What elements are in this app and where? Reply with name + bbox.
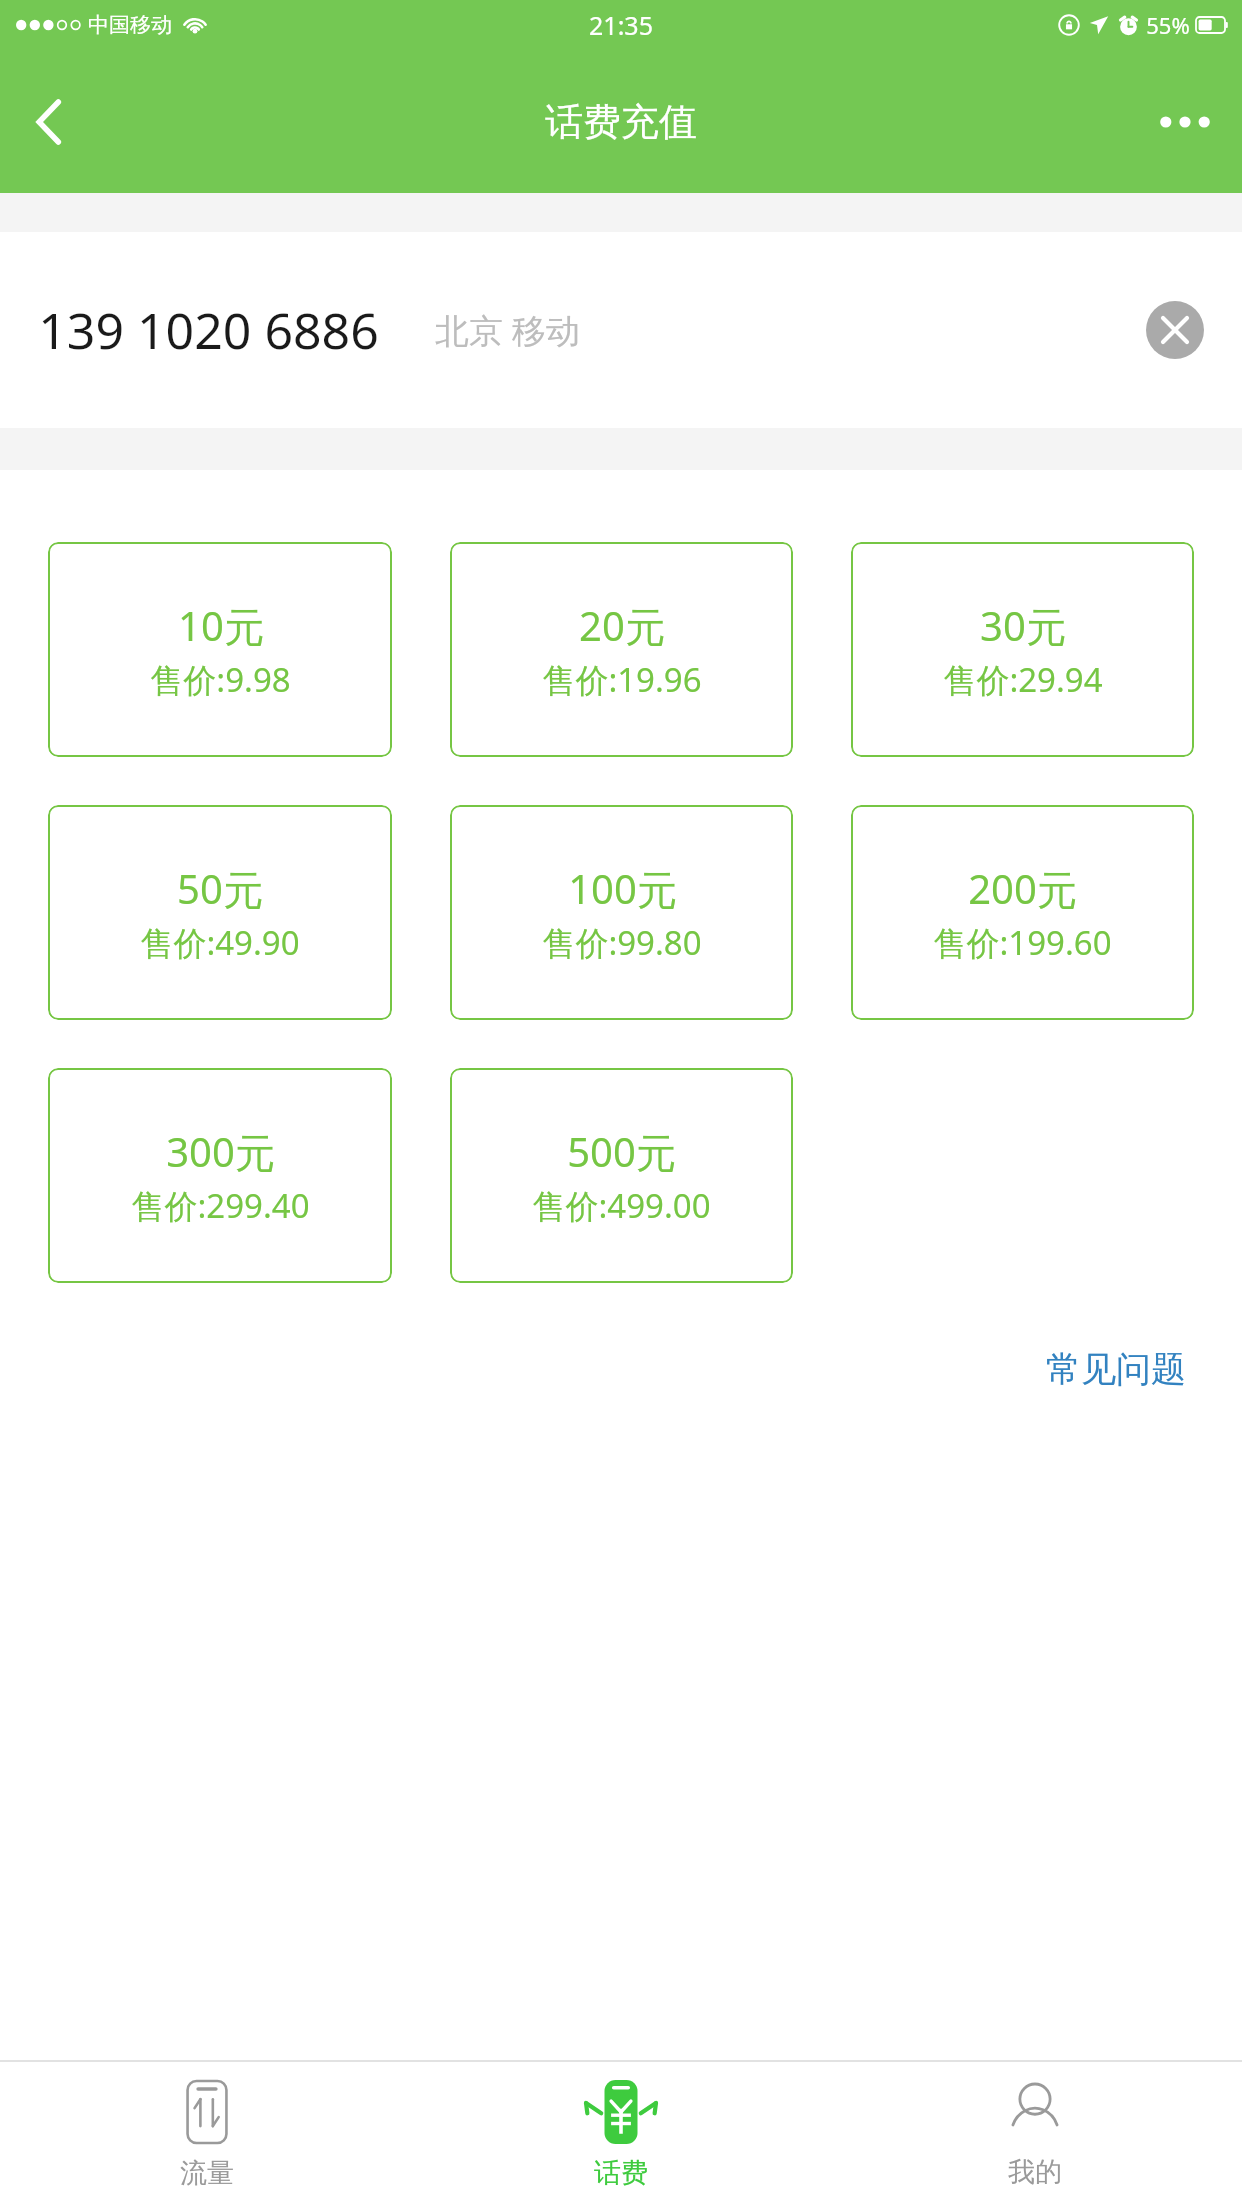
- staticText: 21:35: [589, 8, 653, 42]
- staticText: 常见问题: [1046, 1347, 1186, 1391]
- staticText: 55%: [1146, 10, 1190, 40]
- staticText: 我的: [1008, 2155, 1062, 2189]
- staticText: 话费: [594, 2156, 648, 2190]
- staticText: 售价:199.60: [933, 920, 1112, 965]
- button[interactable]: 常见问题: [1038, 1339, 1194, 1399]
- staticText: 北京 移动: [435, 307, 580, 353]
- staticText: 售价:19.96: [542, 657, 702, 702]
- staticText: 139 1020 6886: [38, 296, 379, 364]
- staticText: 售价:499.00: [532, 1183, 711, 1228]
- staticText: 话费充值: [545, 98, 697, 146]
- staticText: 中国移动: [88, 12, 172, 38]
- staticText: 50元: [177, 861, 263, 916]
- staticText: 300元: [166, 1124, 275, 1179]
- button[interactable]: 我的: [828, 2062, 1242, 2208]
- staticText: 售价:29.94: [943, 657, 1103, 702]
- button[interactable]: 300元: [48, 1068, 392, 1283]
- staticText: 售价:49.90: [140, 920, 300, 965]
- button[interactable]: Back: [10, 83, 88, 161]
- staticText: 100元: [568, 861, 677, 916]
- button[interactable]: More options: [1142, 87, 1228, 157]
- staticText: 流量: [180, 2156, 234, 2190]
- staticText: 售价:99.80: [542, 920, 702, 965]
- staticText: 20元: [579, 598, 665, 653]
- button[interactable]: 100元: [450, 805, 793, 1020]
- button[interactable]: 50元: [48, 805, 392, 1020]
- button[interactable]: 500元: [450, 1068, 793, 1283]
- button[interactable]: 10元: [48, 542, 392, 757]
- staticText: 10元: [178, 598, 264, 653]
- button[interactable]: 30元: [851, 542, 1194, 757]
- staticText: 售价:299.40: [131, 1183, 310, 1228]
- staticText: 200元: [968, 861, 1077, 916]
- button[interactable]: Clear: [1146, 301, 1204, 359]
- button[interactable]: 200元: [851, 805, 1194, 1020]
- button[interactable]: 流量: [0, 2062, 414, 2208]
- staticText: 500元: [567, 1124, 676, 1179]
- button[interactable]: 20元: [450, 542, 793, 757]
- staticText: 售价:9.98: [150, 657, 291, 702]
- button[interactable]: 话费: [414, 2062, 828, 2208]
- staticText: 30元: [980, 598, 1066, 653]
